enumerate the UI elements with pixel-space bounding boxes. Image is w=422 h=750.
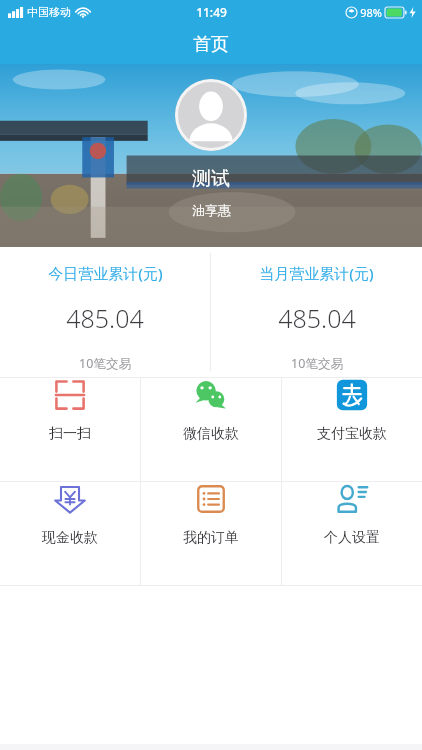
staticText: 微信收款 bbox=[183, 425, 239, 443]
staticText: 我的订单 bbox=[183, 529, 239, 547]
button[interactable]: 当月营业累计(元) bbox=[211, 247, 422, 372]
staticText: 今日营业累计(元) bbox=[48, 263, 163, 283]
button[interactable]: Profile avatar bbox=[175, 79, 247, 151]
button[interactable]: 支付宝收款 bbox=[282, 378, 422, 443]
staticText: 10笔交易 bbox=[291, 355, 343, 372]
staticText: 485.04 bbox=[278, 301, 356, 335]
staticText: 支付宝收款 bbox=[317, 425, 387, 443]
staticText: 98% bbox=[360, 5, 382, 20]
button[interactable]: 微信收款 bbox=[141, 378, 281, 443]
staticText: 当月营业累计(元) bbox=[259, 263, 374, 283]
staticText: 485.04 bbox=[66, 301, 144, 335]
staticText: 中国移动 bbox=[27, 5, 71, 19]
staticText: 10笔交易 bbox=[79, 355, 131, 372]
button[interactable]: 个人设置 bbox=[282, 482, 422, 547]
button[interactable]: 扫一扫 bbox=[0, 378, 140, 443]
staticText: 扫一扫 bbox=[49, 425, 91, 443]
staticText: 11:49 bbox=[196, 4, 227, 20]
button[interactable]: 今日营业累计(元) bbox=[0, 247, 210, 372]
staticText: 个人设置 bbox=[324, 529, 380, 547]
staticText: 油享惠 bbox=[192, 202, 231, 218]
staticText: 测试 bbox=[192, 167, 230, 191]
button[interactable]: 现金收款 bbox=[0, 482, 140, 547]
staticText: 现金收款 bbox=[42, 529, 98, 547]
staticText: 首页 bbox=[193, 33, 229, 56]
button[interactable]: 我的订单 bbox=[141, 482, 281, 547]
